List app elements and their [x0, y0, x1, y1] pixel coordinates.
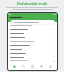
button[interactable]	[8, 35, 57, 39]
button[interactable]: Alerts	[39, 63, 44, 70]
button[interactable]	[8, 55, 57, 59]
button[interactable]	[8, 51, 57, 55]
button[interactable]	[8, 47, 57, 51]
button[interactable]: Search	[21, 63, 26, 70]
button[interactable]	[8, 43, 57, 47]
button[interactable]	[8, 31, 57, 35]
button[interactable]	[8, 27, 57, 31]
button[interactable]: Home	[12, 63, 17, 70]
button[interactable]: Profile	[48, 63, 53, 70]
button[interactable]	[10, 20, 55, 24]
staticText: Find absolute truth	[0, 2, 64, 6]
button[interactable]: Add	[30, 63, 35, 70]
